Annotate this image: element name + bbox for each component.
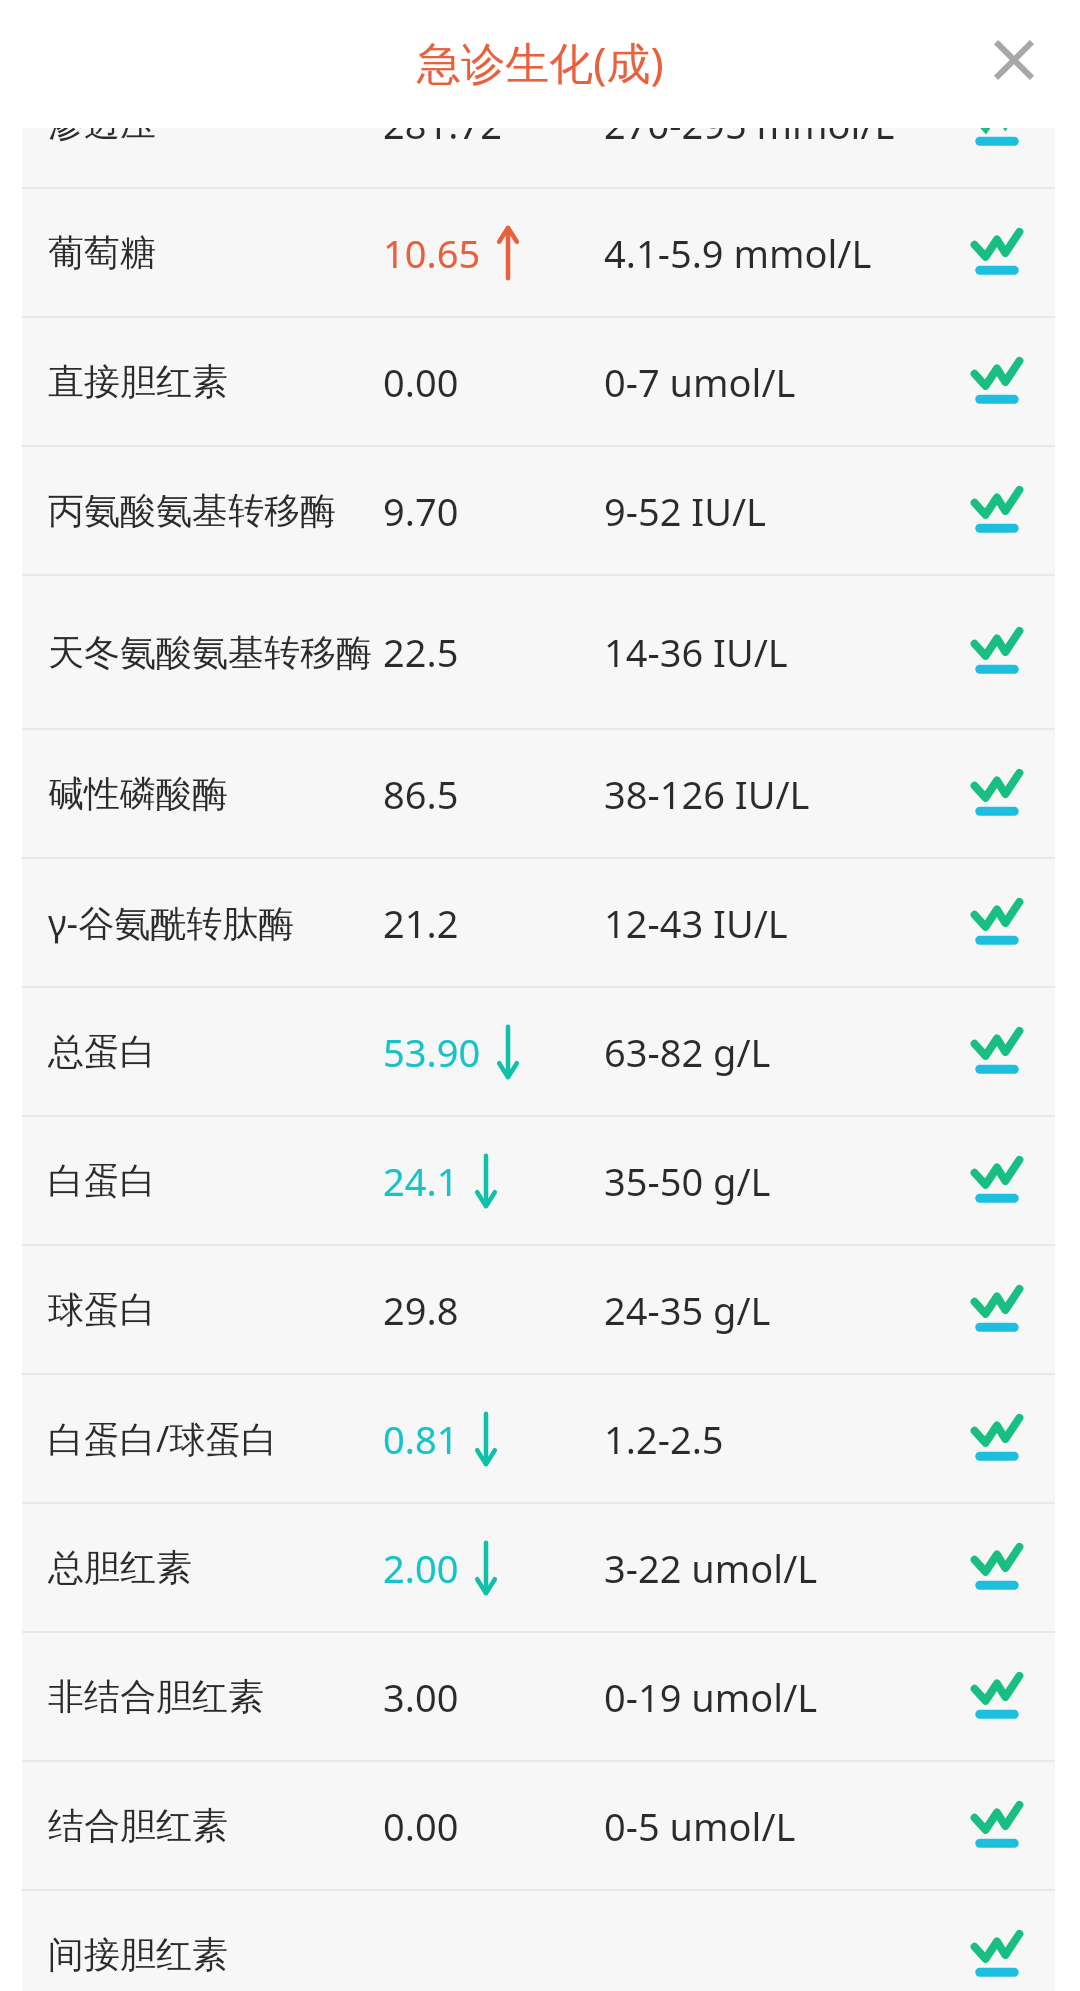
staticText: 非结合胆红素 xyxy=(48,1674,264,1719)
staticText: 4.1-5.9 mmol/L xyxy=(604,227,872,279)
staticText: 270-295 mmol/L xyxy=(604,98,895,150)
staticText: 0-19 umol/L xyxy=(604,1671,818,1723)
button[interactable]: 趋势图 xyxy=(961,1790,1033,1862)
staticText: 38-126 IU/L xyxy=(604,768,810,820)
staticText: 29.8 xyxy=(383,1284,459,1336)
button[interactable]: 总蛋白 xyxy=(22,988,1055,1115)
button[interactable]: 趋势图 xyxy=(961,217,1033,289)
staticText: 35-50 g/L xyxy=(604,1155,771,1207)
staticText: 1.2-2.5 xyxy=(604,1413,724,1465)
staticText: 总胆红素 xyxy=(48,1545,192,1590)
button[interactable]: 趋势图 xyxy=(961,616,1033,688)
staticText: 0-5 umol/L xyxy=(604,1800,796,1852)
staticText: 10.65 xyxy=(383,227,481,279)
staticText: 渗透压 xyxy=(48,101,156,146)
staticText: 3.00 xyxy=(383,1671,459,1723)
button[interactable]: 总胆红素 xyxy=(22,1504,1055,1631)
staticText: 2.00 xyxy=(383,1542,459,1594)
button[interactable]: 趋势图 xyxy=(961,1532,1033,1604)
button[interactable]: 葡萄糖 xyxy=(22,189,1055,316)
button[interactable]: γ-谷氨酰转肽酶 xyxy=(22,859,1055,986)
button[interactable]: 趋势图 xyxy=(961,1919,1033,1991)
staticText: 86.5 xyxy=(383,768,459,820)
button[interactable]: 结合胆红素 xyxy=(22,1762,1055,1889)
button[interactable]: 丙氨酸氨基转移酶 xyxy=(22,447,1055,574)
staticText: 急诊生化(成) xyxy=(417,32,664,92)
staticText: 直接胆红素 xyxy=(48,359,228,404)
button[interactable]: 趋势图 xyxy=(961,1403,1033,1475)
button[interactable]: 趋势图 xyxy=(961,346,1033,418)
staticText: 球蛋白 xyxy=(48,1287,156,1332)
button[interactable]: 趋势图 xyxy=(961,1145,1033,1217)
button[interactable]: 趋势图 xyxy=(961,475,1033,547)
staticText: 白蛋白 xyxy=(48,1158,156,1203)
button[interactable]: Close xyxy=(972,18,1056,102)
staticText: 白蛋白/球蛋白 xyxy=(48,1414,278,1463)
staticText: 24-35 g/L xyxy=(604,1284,771,1336)
staticText: 丙氨酸氨基转移酶 xyxy=(48,488,336,533)
button[interactable]: 趋势图 xyxy=(961,758,1033,830)
staticText: 3-22 umol/L xyxy=(604,1542,818,1594)
staticText: 总蛋白 xyxy=(48,1029,156,1074)
button[interactable]: 间接胆红素 xyxy=(22,1891,1055,1991)
staticText: 结合胆红素 xyxy=(48,1803,228,1848)
staticText: 0.81 xyxy=(383,1413,459,1465)
staticText: 9-52 IU/L xyxy=(604,485,767,537)
button[interactable]: 直接胆红素 xyxy=(22,318,1055,445)
button[interactable]: 趋势图 xyxy=(961,88,1033,160)
button[interactable]: 天冬氨酸氨基转移酶 xyxy=(22,576,1055,728)
staticText: 0.00 xyxy=(383,1800,459,1852)
button[interactable]: 趋势图 xyxy=(961,1661,1033,1733)
button[interactable]: 趋势图 xyxy=(961,1016,1033,1088)
staticText: γ-谷氨酰转肽酶 xyxy=(48,898,295,947)
button[interactable]: 非结合胆红素 xyxy=(22,1633,1055,1760)
button[interactable]: 白蛋白/球蛋白 xyxy=(22,1375,1055,1502)
staticText: 12-43 IU/L xyxy=(604,897,788,949)
staticText: 葡萄糖 xyxy=(48,230,156,275)
staticText: 间接胆红素 xyxy=(48,1932,228,1977)
staticText: 0.00 xyxy=(383,356,459,408)
staticText: 14-36 IU/L xyxy=(604,626,788,678)
staticText: 天冬氨酸氨基转移酶 xyxy=(48,630,372,675)
button[interactable]: 球蛋白 xyxy=(22,1246,1055,1373)
button[interactable]: 碱性磷酸酶 xyxy=(22,730,1055,857)
staticText: 281.72 xyxy=(383,98,502,150)
staticText: 碱性磷酸酶 xyxy=(48,771,228,816)
staticText: 22.5 xyxy=(383,626,459,678)
staticText: 63-82 g/L xyxy=(604,1026,771,1078)
button[interactable]: 白蛋白 xyxy=(22,1117,1055,1244)
button[interactable]: 趋势图 xyxy=(961,887,1033,959)
staticText: 24.1 xyxy=(383,1155,459,1207)
button[interactable]: 趋势图 xyxy=(961,1274,1033,1346)
button[interactable]: 渗透压 xyxy=(22,60,1055,187)
staticText: 0-7 umol/L xyxy=(604,356,796,408)
staticText: 9.70 xyxy=(383,485,459,537)
staticText: 53.90 xyxy=(383,1026,481,1078)
staticText: 21.2 xyxy=(383,897,459,949)
